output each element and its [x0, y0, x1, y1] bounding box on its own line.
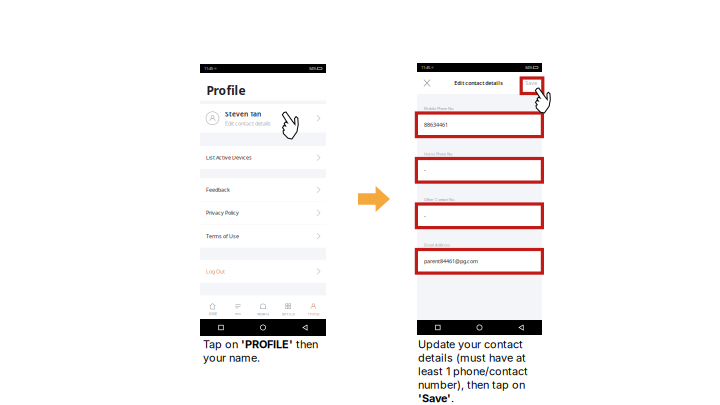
staticText: -	[424, 212, 426, 219]
staticText: Update your contact	[418, 338, 523, 351]
staticText: Edit contact details	[454, 79, 503, 87]
staticText: 84%	[309, 66, 316, 71]
button[interactable]: Back	[500, 320, 542, 335]
button[interactable]: Save	[520, 72, 542, 94]
staticText: Log Out	[206, 268, 225, 275]
button[interactable]: Terms of Use	[200, 225, 326, 248]
button[interactable]: Close	[417, 72, 437, 94]
staticText: parent84461@pg.com	[424, 258, 478, 265]
staticText: Feedback	[206, 186, 230, 193]
staticText: details (must have at	[418, 351, 526, 364]
staticText: 88634461	[424, 121, 448, 128]
staticText: Privacy Policy	[206, 209, 239, 216]
staticText: MESSAGE	[257, 312, 269, 316]
button[interactable]: SERVICES	[276, 296, 301, 319]
staticText: 11:45	[204, 66, 213, 71]
button[interactable]: Log Out	[200, 260, 326, 283]
button[interactable]: FEED	[225, 296, 250, 319]
button[interactable]: MESSAGE	[250, 296, 276, 319]
button[interactable]: HOME	[200, 296, 225, 319]
staticText: 'PROFILE'	[241, 338, 293, 351]
staticText: 84%	[525, 65, 532, 70]
staticText: Save	[525, 79, 537, 87]
staticText: Email Address	[424, 242, 450, 248]
staticText: Steven Tan	[225, 110, 261, 118]
button[interactable]: Home	[242, 319, 284, 336]
staticText: .	[451, 392, 454, 405]
button[interactable]: Back	[284, 319, 326, 336]
staticText: -	[424, 167, 426, 174]
staticText: Edit contact details	[225, 120, 271, 127]
button[interactable]: Recent apps	[417, 320, 459, 335]
staticText: ✉	[431, 66, 433, 69]
staticText: ✉	[214, 67, 216, 70]
button[interactable]: Feedback	[200, 178, 326, 201]
staticText: then	[293, 338, 318, 351]
staticText: 11:45	[421, 65, 430, 70]
staticText: Mobile Phone No.	[424, 106, 454, 111]
staticText: 'Save'	[418, 392, 451, 405]
button[interactable]: Recent apps	[200, 319, 242, 336]
staticText: number), then tap on	[418, 378, 525, 391]
button[interactable]: Privacy Policy	[200, 201, 326, 225]
staticText: HOME	[209, 312, 216, 316]
staticText: Other Contact No.	[424, 197, 455, 202]
staticText: PROFILE	[308, 312, 319, 316]
button[interactable]: PROFILE	[301, 296, 326, 319]
staticText: least 1 phone/contact	[418, 365, 528, 378]
staticText: List Active Devices	[206, 154, 252, 161]
button[interactable]: Steven Tan	[200, 104, 326, 132]
staticText: Profile	[206, 82, 245, 98]
button[interactable]: Home	[459, 320, 500, 335]
button[interactable]: List Active Devices	[200, 146, 326, 169]
staticText: Tap on	[203, 338, 241, 351]
staticText: your name.	[203, 351, 260, 364]
staticText: SERVICES	[282, 312, 295, 316]
staticText: FEED	[235, 312, 241, 316]
staticText: Home Phone No.	[424, 151, 453, 157]
staticText: Terms of Use	[206, 233, 239, 240]
